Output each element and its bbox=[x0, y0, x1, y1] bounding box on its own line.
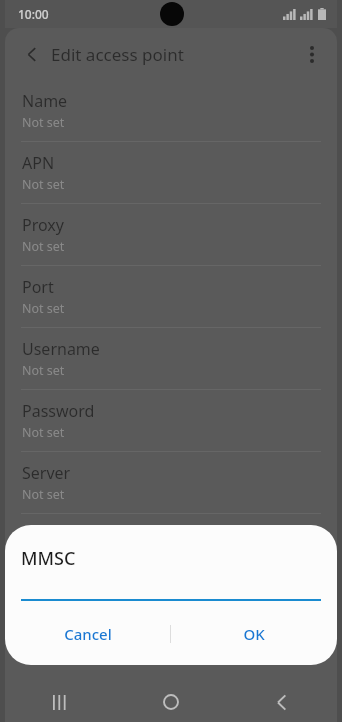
button[interactable]: Back bbox=[226, 682, 337, 722]
staticText: Not set bbox=[22, 424, 65, 441]
staticText: Not set bbox=[22, 548, 65, 565]
staticText: 10:00 bbox=[18, 6, 49, 22]
button[interactable]: Recent apps bbox=[5, 682, 115, 722]
button[interactable]: Home bbox=[115, 682, 226, 722]
staticText: Not set bbox=[22, 114, 65, 131]
button[interactable]: Server bbox=[5, 452, 337, 513]
staticText: OK bbox=[243, 624, 265, 644]
staticText: Name bbox=[22, 90, 68, 112]
staticText: Port bbox=[22, 276, 54, 298]
staticText: Username bbox=[22, 338, 100, 360]
button[interactable]: MMS port bbox=[5, 576, 337, 637]
staticText: Proxy bbox=[22, 214, 64, 236]
button[interactable]: Proxy bbox=[5, 204, 337, 265]
button[interactable]: Port bbox=[5, 266, 337, 327]
staticText: Password bbox=[22, 400, 95, 422]
staticText: Server bbox=[22, 462, 71, 484]
staticText: Cancel bbox=[64, 624, 112, 644]
button[interactable]: Back bbox=[13, 35, 51, 73]
staticText: Not set bbox=[22, 238, 65, 255]
button[interactable]: Username bbox=[5, 328, 337, 389]
button[interactable]: OK bbox=[171, 602, 337, 665]
staticText: Not set bbox=[22, 176, 65, 193]
button[interactable]: APN bbox=[5, 142, 337, 203]
button[interactable]: Name bbox=[5, 80, 337, 141]
staticText: Not set bbox=[22, 300, 65, 317]
staticText: Not set bbox=[22, 362, 65, 379]
button[interactable]: MMSC bbox=[5, 514, 337, 575]
staticText: Edit access point bbox=[51, 43, 184, 66]
staticText: MMSC bbox=[21, 546, 76, 571]
staticText: MMSC bbox=[22, 524, 70, 546]
button[interactable]: Cancel bbox=[5, 602, 170, 665]
button[interactable]: Password bbox=[5, 390, 337, 451]
button[interactable]: More options bbox=[293, 35, 331, 73]
staticText: Not set bbox=[22, 486, 65, 503]
staticText: MMS port bbox=[22, 586, 96, 608]
staticText: APN bbox=[22, 152, 55, 174]
